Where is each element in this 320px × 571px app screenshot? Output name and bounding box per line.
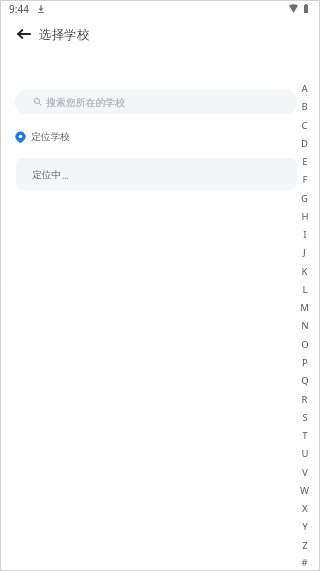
staticText: 定位学校 [31,131,70,143]
staticText: 9:44 [9,2,29,16]
button[interactable]: # [298,554,311,571]
staticText: G [301,192,308,205]
button[interactable]: I [298,225,311,243]
button[interactable]: M [298,298,311,316]
staticText: C [301,119,308,132]
staticText: 定位中 [32,169,62,181]
button[interactable]: U [298,444,311,462]
staticText: E [302,155,308,168]
button[interactable]: A [298,79,311,97]
staticText: Z [302,539,308,552]
button[interactable]: H [298,207,311,225]
button[interactable]: J [298,243,311,261]
button[interactable]: 定位中 [16,158,297,190]
staticText: 选择学校 [39,27,90,43]
button[interactable]: R [298,390,311,408]
button[interactable]: P [298,353,311,371]
staticText: D [301,137,308,150]
staticText: L [302,283,308,296]
staticText: I [303,228,307,241]
staticText: R [301,393,308,406]
button[interactable]: Z [298,536,311,554]
staticText: H [301,210,309,223]
button[interactable]: T [298,426,311,444]
button[interactable]: W [298,481,311,499]
staticText: ... [62,170,69,181]
button[interactable]: F [298,170,311,188]
staticText: X [302,502,308,515]
button[interactable]: X [298,499,311,517]
button[interactable]: C [298,116,311,134]
staticText: U [301,447,309,460]
staticText: W [300,484,309,497]
staticText: J [303,246,306,259]
staticText: S [302,411,308,424]
button[interactable]: Q [298,371,311,389]
button[interactable]: D [298,134,311,152]
button[interactable]: E [298,152,311,170]
staticText: F [302,173,308,186]
staticText: N [301,319,309,332]
staticText: 搜索您所在的学校 [46,96,126,108]
staticText: P [302,356,308,369]
button[interactable]: Back [12,22,36,46]
staticText: K [301,265,308,278]
button[interactable]: V [298,463,311,481]
button[interactable]: 搜索您所在的学校 [15,90,297,114]
staticText: # [301,556,308,569]
button[interactable]: N [298,316,311,334]
staticText: Q [301,374,309,387]
button[interactable]: G [298,189,311,207]
button[interactable]: O [298,335,311,353]
button[interactable]: S [298,408,311,426]
button[interactable]: Y [298,517,311,535]
button[interactable]: K [298,262,311,280]
staticText: T [302,429,308,442]
staticText: Y [302,520,308,533]
button[interactable]: L [298,280,311,298]
staticText: B [301,100,308,113]
staticText: O [301,338,309,351]
staticText: M [300,301,309,314]
staticText: A [301,82,308,95]
button[interactable]: B [298,97,311,115]
staticText: V [302,466,308,479]
